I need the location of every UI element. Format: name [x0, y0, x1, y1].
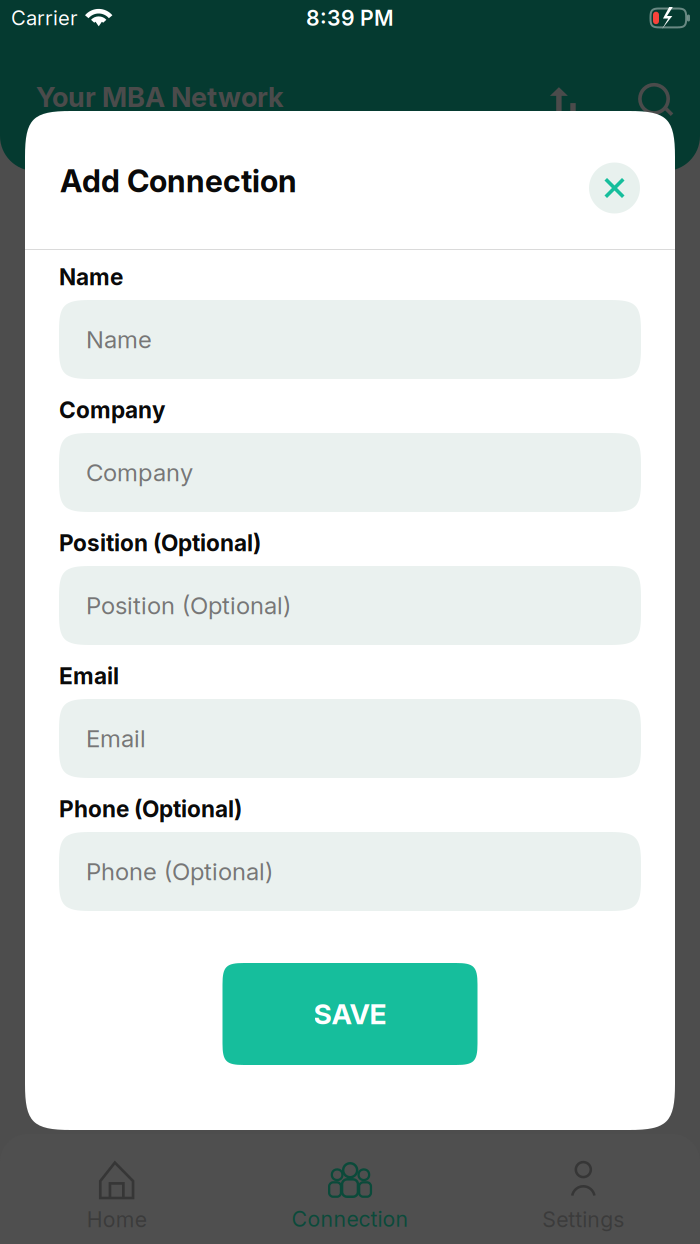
button[interactable]: Close: [589, 148, 640, 213]
staticText: Position (Optional): [59, 529, 261, 557]
staticText: Company: [86, 458, 193, 487]
staticText: Company: [59, 396, 165, 424]
button[interactable]: SAVE: [222, 963, 477, 1065]
staticText: Phone (Optional): [86, 857, 273, 886]
staticText: Home: [87, 1207, 147, 1232]
staticText: Settings: [542, 1207, 624, 1232]
button[interactable]: Sort: [550, 80, 576, 114]
staticText: SAVE: [313, 997, 386, 1031]
staticText: Email: [59, 662, 119, 690]
staticText: Your MBA Network: [36, 80, 284, 114]
staticText: Name: [59, 263, 123, 291]
staticText: Carrier: [11, 6, 78, 30]
staticText: Connection: [291, 1206, 408, 1232]
staticText: 8:39 PM: [306, 5, 394, 31]
staticText: Phone (Optional): [59, 795, 242, 823]
staticText: Email: [86, 724, 146, 753]
button[interactable]: Settings: [467, 1160, 700, 1232]
staticText: Position (Optional): [86, 591, 291, 620]
button[interactable]: Home: [0, 1160, 233, 1232]
staticText: Name: [86, 325, 152, 354]
button[interactable]: Search: [576, 79, 672, 115]
button[interactable]: Connection: [233, 1160, 467, 1232]
staticText: Add Connection: [60, 162, 297, 199]
